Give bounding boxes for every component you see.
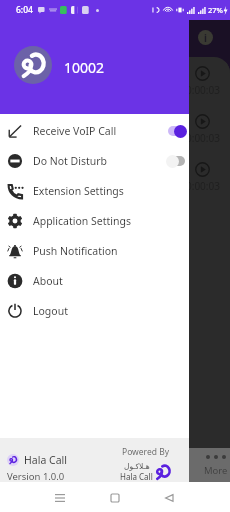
staticText: Powered By	[122, 446, 170, 458]
button[interactable]: Info	[198, 30, 213, 45]
staticText: Do Not Disturb	[33, 154, 108, 168]
staticText: More	[204, 464, 228, 477]
staticText: Version 1.0.0	[7, 470, 65, 483]
button[interactable]: Logout	[0, 296, 189, 326]
button[interactable]: Receive VoIP Call	[166, 122, 187, 140]
staticText: i	[204, 31, 207, 45]
staticText: Push Notification	[33, 244, 118, 258]
staticText: Receive VoIP Call	[33, 124, 117, 138]
staticText: 0:00:03	[186, 83, 220, 97]
staticText: 10002	[64, 58, 105, 77]
staticText: About	[33, 274, 63, 288]
staticText: 0:00:03	[186, 179, 220, 193]
staticText: Hala Call	[24, 453, 67, 467]
staticText: 27%	[208, 5, 223, 15]
button[interactable]: Recents	[49, 487, 71, 509]
button[interactable]: Home	[104, 487, 126, 509]
button[interactable]: Back	[158, 487, 180, 509]
staticText: Logout	[33, 304, 68, 318]
button[interactable]: Push Notification	[0, 236, 189, 266]
button[interactable]: Receive VoIP Call	[0, 116, 189, 146]
staticText: هـلاكـول	[124, 462, 150, 471]
staticText: Extension Settings	[33, 184, 124, 198]
button[interactable]: Extension Settings	[0, 176, 189, 206]
staticText: 0:00:03	[186, 131, 220, 145]
button[interactable]: About	[0, 266, 189, 296]
staticText: 6:04	[16, 4, 33, 16]
button[interactable]: Do Not Disturb	[166, 152, 187, 170]
staticText: Hala Call	[120, 471, 153, 482]
button[interactable]: Do Not Disturb	[0, 146, 189, 176]
staticText: Application Settings	[33, 214, 131, 228]
button[interactable]: Application Settings	[0, 206, 189, 236]
